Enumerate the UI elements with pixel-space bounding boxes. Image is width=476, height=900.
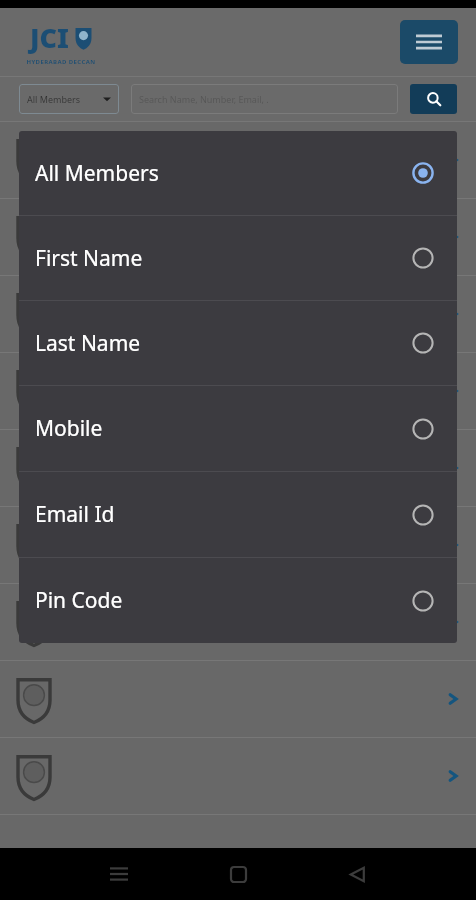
button[interactable]: All Members bbox=[19, 131, 457, 215]
staticText: First Name bbox=[35, 244, 143, 273]
staticText: Email Id bbox=[35, 500, 115, 529]
button[interactable]: Search Name, Number, Email, . bbox=[131, 84, 398, 114]
staticText: All Members bbox=[35, 159, 159, 188]
button[interactable]: Pin Code bbox=[19, 558, 457, 643]
staticText: Last Name bbox=[35, 329, 141, 358]
staticText: Mobile bbox=[35, 414, 103, 443]
button[interactable] bbox=[0, 199, 476, 275]
button[interactable]: First Name bbox=[19, 216, 457, 300]
button[interactable] bbox=[0, 584, 476, 660]
staticText: JCI bbox=[30, 19, 69, 56]
button[interactable] bbox=[0, 738, 476, 814]
button[interactable] bbox=[0, 353, 476, 429]
staticText: All Members bbox=[27, 93, 81, 105]
button[interactable]: Open navigation menu bbox=[400, 20, 458, 64]
button[interactable] bbox=[0, 661, 476, 737]
staticText: Pin Code bbox=[35, 586, 123, 615]
button[interactable]: Last Name bbox=[19, 301, 457, 385]
button[interactable] bbox=[0, 122, 476, 198]
button[interactable] bbox=[0, 507, 476, 583]
button[interactable]: Back bbox=[337, 854, 377, 894]
staticText: HYDERABAD DECCAN bbox=[26, 58, 96, 66]
button[interactable]: Home bbox=[218, 854, 258, 894]
button[interactable] bbox=[0, 276, 476, 352]
button[interactable]: Email Id bbox=[19, 472, 457, 557]
button[interactable]: Recents bbox=[99, 854, 139, 894]
button[interactable]: Search bbox=[410, 84, 457, 114]
button[interactable] bbox=[0, 430, 476, 506]
button[interactable]: All Members bbox=[19, 84, 119, 114]
staticText: Search Name, Number, Email, . bbox=[139, 93, 269, 105]
button[interactable]: Mobile bbox=[19, 386, 457, 471]
